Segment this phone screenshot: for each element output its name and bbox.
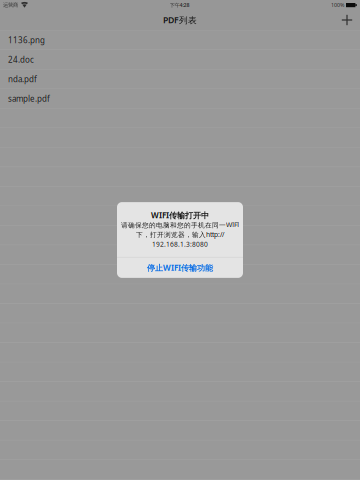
staticText: 1136.png xyxy=(8,35,45,45)
button[interactable]: 1136.png xyxy=(0,31,360,50)
button[interactable]: Add xyxy=(332,10,360,30)
staticText: 下午4:28 xyxy=(169,1,189,9)
staticText: 24.doc xyxy=(8,54,34,65)
staticText: 下，打开浏览器，输入http:// xyxy=(136,230,224,239)
staticText: nda.pdf xyxy=(8,74,37,85)
staticText: PDF列表 xyxy=(163,14,197,26)
staticText: 请确保您的电脑和您的手机在同一WIFI xyxy=(121,220,239,229)
staticText: 停止WIFI传输功能 xyxy=(147,262,213,273)
staticText: 运营商 xyxy=(3,2,18,8)
button[interactable]: sample.pdf xyxy=(0,89,360,109)
staticText: 100% xyxy=(331,1,344,9)
staticText: WIFI传输打开中 xyxy=(151,210,209,220)
staticText: sample.pdf xyxy=(8,93,50,104)
button[interactable]: 停止WIFI传输功能 xyxy=(117,257,243,278)
button[interactable]: 24.doc xyxy=(0,50,360,70)
staticText: 192.168.1.3:8080 xyxy=(152,240,208,249)
button[interactable]: nda.pdf xyxy=(0,70,360,89)
